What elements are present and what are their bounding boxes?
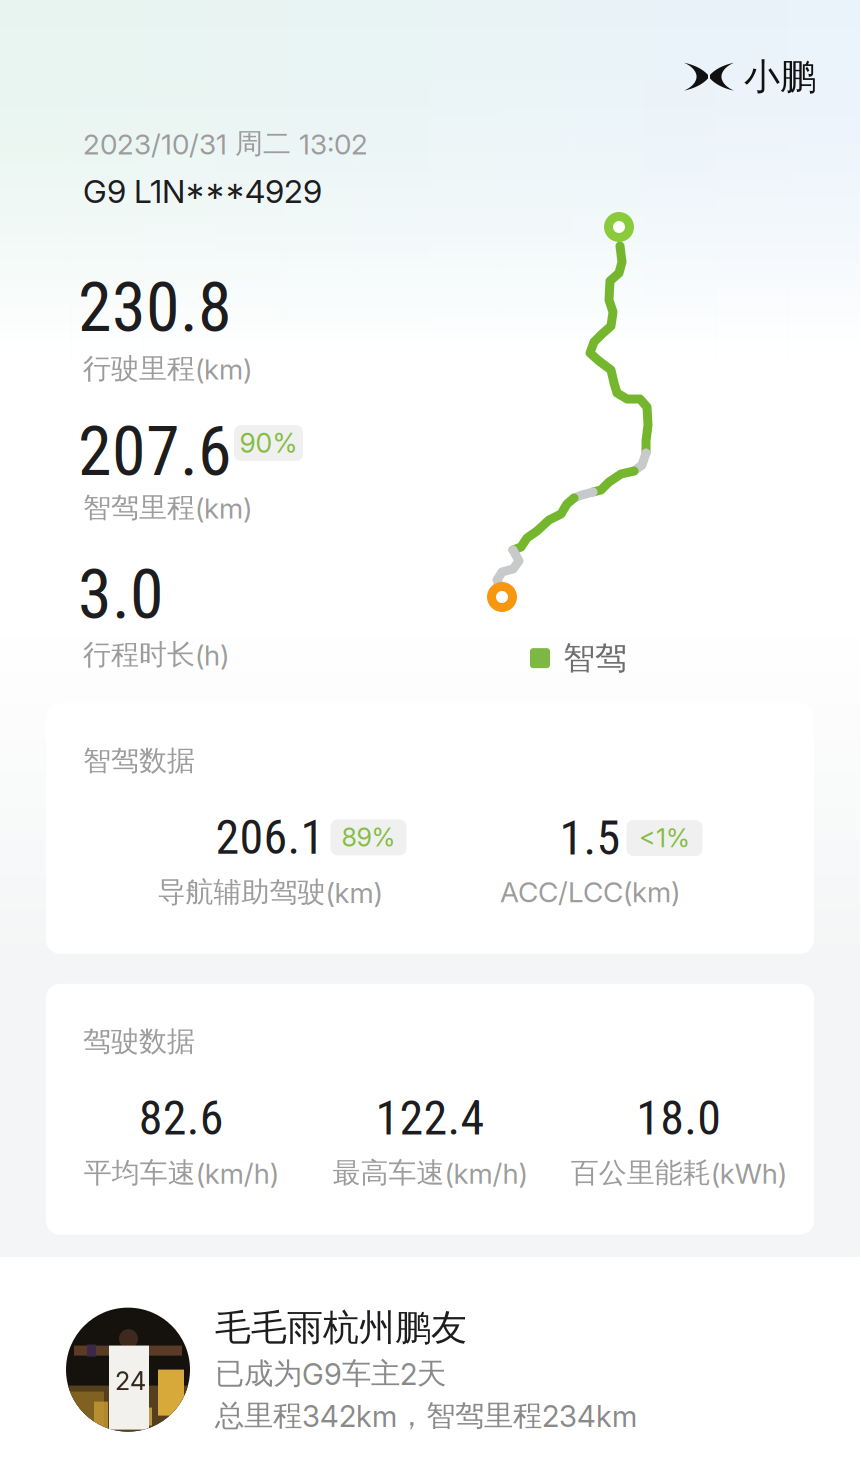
button[interactable]: 24	[0, 1257, 860, 1476]
staticText: 206.1	[215, 809, 324, 865]
staticText: G9 L1N***4929	[83, 172, 322, 211]
staticText: 82.6	[139, 1090, 224, 1146]
staticText: 已成为G9车主2天	[215, 1355, 446, 1392]
staticText: <1%	[639, 823, 690, 853]
staticText: 行程时长(h)	[83, 637, 229, 672]
staticText: 最高车速(km/h)	[332, 1155, 527, 1191]
staticText: 207.6	[78, 412, 232, 492]
staticText: 毛毛雨杭州鹏友	[215, 1305, 467, 1350]
staticText: ACC/LCC(km)	[500, 875, 680, 909]
staticText: 3.0	[78, 555, 164, 635]
staticText: 智驾里程(km)	[83, 490, 252, 525]
staticText: 平均车速(km/h)	[84, 1155, 279, 1191]
button[interactable]: XPeng	[683, 54, 816, 99]
staticText: 导航辅助驾驶(km)	[157, 874, 382, 910]
staticText: 122.4	[375, 1090, 484, 1146]
staticText: 2023/10/31 周二 13:02	[83, 126, 368, 161]
staticText: 24	[115, 1366, 146, 1396]
staticText: 智驾数据	[83, 743, 195, 778]
staticText: 智驾	[563, 638, 627, 678]
staticText: 90%	[239, 427, 297, 459]
staticText: 89%	[341, 822, 395, 853]
staticText: 总里程342km，智驾里程234km	[215, 1397, 637, 1434]
staticText: 百公里能耗(kWh)	[571, 1155, 787, 1191]
staticText: 行驶里程(km)	[83, 351, 252, 386]
staticText: 1.5	[559, 810, 620, 866]
staticText: 驾驶数据	[83, 1024, 195, 1059]
staticText: 230.8	[78, 268, 232, 348]
staticText: 小鹏	[744, 54, 816, 99]
staticText: 18.0	[636, 1090, 721, 1146]
